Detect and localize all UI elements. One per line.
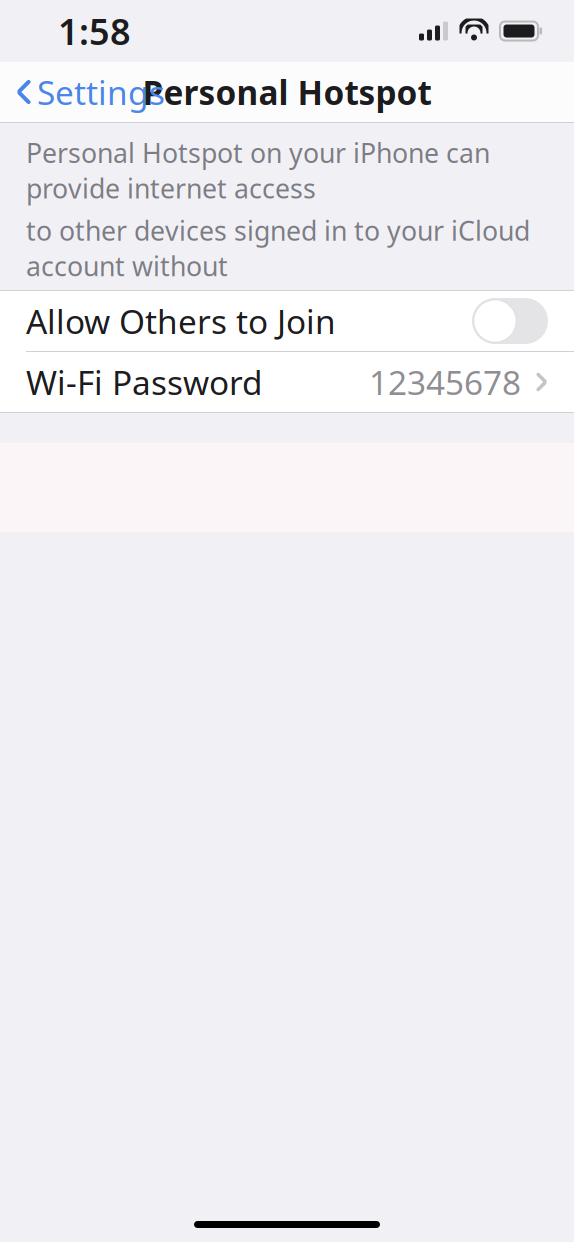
staticText: 12345678: [369, 360, 521, 404]
staticText: Wi-Fi Password: [26, 360, 263, 404]
staticText: Allow Others to Join: [26, 299, 336, 343]
staticText: Settings: [37, 70, 165, 114]
staticText: to other devices signed in to your iClou…: [26, 213, 530, 284]
button[interactable]: Settings: [0, 62, 165, 122]
staticText: Personal Hotspot: [142, 70, 431, 114]
staticText: Personal Hotspot on your iPhone can prov…: [26, 135, 490, 206]
button[interactable]: Allow Others to Join: [0, 291, 574, 351]
button[interactable]: Wi-Fi Password: [0, 352, 574, 412]
staticText: 1:58: [58, 7, 131, 55]
staticText: requiring you to enter the password.: [26, 291, 482, 326]
